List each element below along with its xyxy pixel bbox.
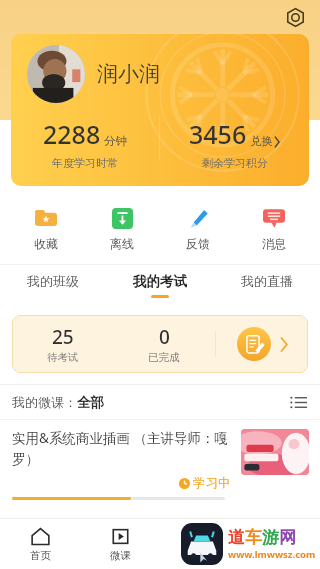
button[interactable]: 消息 [236,202,312,255]
staticText: 罗） [12,451,39,468]
staticText: 3456 [189,117,247,151]
staticText: 离线 [110,236,134,251]
button[interactable]: Filter [288,392,308,412]
staticText: 收藏 [34,236,58,251]
staticText: 全部 [77,394,104,411]
button[interactable]: 我的直播 [213,265,320,305]
staticText: 剩余学习积分 [202,156,268,170]
staticText: 反馈 [186,236,210,251]
staticText: 润小润 [97,61,160,87]
staticText: 我的直播 [241,273,293,289]
staticText: 学习中 [193,475,231,491]
staticText: 待考试 [47,351,79,364]
staticText: 分钟 [104,134,127,148]
staticText: 兑换 [250,134,273,148]
button[interactable]: 实用&系统商业插画 （主讲导师：嘎 [12,429,309,491]
staticText: 游 [262,527,279,548]
staticText: www.lmwwsz.com [228,548,316,561]
staticText: 网 [279,527,296,548]
button[interactable]: 3456 [160,117,309,170]
button[interactable]: 我的微课： [12,385,308,419]
button[interactable]: 离线 [84,202,160,255]
staticText: 0 [159,324,170,350]
staticText: 已完成 [148,351,180,364]
button[interactable]: 微课 [80,519,160,569]
button[interactable]: 我的考试 [106,265,213,305]
button[interactable]: 25 [12,315,308,373]
button[interactable]: 0 [113,324,215,364]
staticText: 首页 [30,549,51,562]
button[interactable]: 润小润 [11,34,309,186]
staticText: 消息 [262,236,286,251]
button[interactable]: Settings [282,4,308,30]
button[interactable]: 首页 [0,519,80,569]
button[interactable] [241,429,309,475]
staticText: 车 [245,527,262,548]
staticText: 微课 [110,549,131,562]
button[interactable] [27,45,85,103]
staticText: 25 [52,324,74,350]
staticText: 年度学习时常 [52,156,118,170]
staticText: 我的班级 [27,273,79,289]
button[interactable]: 收藏 [8,202,84,255]
button[interactable]: Exam [237,327,271,361]
staticText: 2288 [43,117,101,151]
button[interactable]: 反馈 [160,202,236,255]
staticText: 我的微课： [12,394,77,410]
button[interactable]: 25 [12,324,113,364]
staticText: 我的考试 [133,273,187,290]
button[interactable]: 我的班级 [0,265,106,305]
button[interactable]: 2288 [11,117,159,170]
staticText: 道 [228,527,245,548]
staticText: 实用&系统商业插画 （主讲导师：嘎 [12,429,228,447]
